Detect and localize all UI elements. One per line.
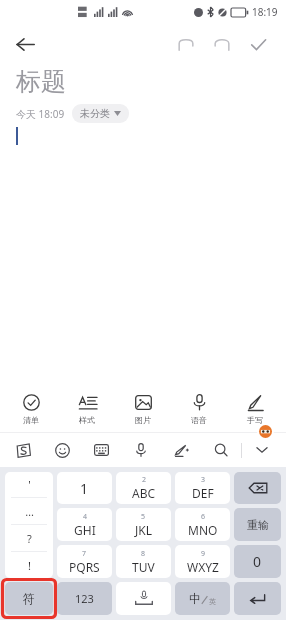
- button[interactable]: 1: [57, 472, 112, 504]
- staticText: 中: [189, 591, 201, 606]
- button[interactable]: 9: [175, 545, 230, 578]
- staticText: 清单: [23, 415, 39, 425]
- staticText: 0: [253, 552, 262, 571]
- staticText: ABC: [132, 485, 156, 501]
- button[interactable]: Switch language: [175, 582, 230, 615]
- staticText: PQRS: [69, 559, 100, 575]
- staticText: 18:19: [252, 5, 278, 19]
- button[interactable]: Redo: [204, 26, 240, 62]
- staticText: 图片: [135, 415, 151, 425]
- staticText: 英: [209, 597, 216, 606]
- staticText: JKL: [135, 522, 152, 538]
- button[interactable]: …: [5, 498, 53, 524]
- button[interactable]: Enter: [234, 582, 281, 615]
- button[interactable]: Emoji: [43, 433, 82, 467]
- staticText: 2: [142, 475, 147, 485]
- staticText: ': [28, 477, 31, 492]
- staticText: ?: [27, 531, 32, 546]
- staticText: 符: [23, 591, 35, 606]
- staticText: 今天 18:09: [16, 107, 65, 121]
- staticText: …: [25, 504, 34, 519]
- button[interactable]: Voice input: [121, 433, 161, 467]
- button[interactable]: Account: [257, 423, 274, 440]
- staticText: MNO: [188, 522, 218, 538]
- button[interactable]: 图片: [118, 391, 168, 427]
- staticText: 123: [75, 591, 94, 606]
- staticText: 1: [80, 479, 89, 498]
- button[interactable]: 未分类: [72, 104, 129, 123]
- button[interactable]: Hide keyboard: [242, 433, 282, 467]
- button[interactable]: 7: [57, 545, 112, 578]
- button[interactable]: !: [5, 552, 53, 578]
- button[interactable]: 123: [57, 582, 112, 615]
- button[interactable]: 5: [116, 508, 171, 541]
- button[interactable]: 重输: [234, 508, 281, 541]
- staticText: 7: [82, 549, 87, 559]
- staticText: 3: [201, 475, 206, 485]
- staticText: 8: [141, 549, 146, 559]
- button[interactable]: 2: [116, 472, 171, 504]
- staticText: 手写: [247, 415, 263, 425]
- button[interactable]: 语音: [174, 391, 224, 427]
- button[interactable]: 0: [234, 545, 281, 578]
- button[interactable]: Search: [201, 433, 241, 467]
- button[interactable]: Sogou input: [4, 433, 43, 467]
- button[interactable]: Keyboard: [82, 433, 121, 467]
- button[interactable]: 样式: [62, 391, 112, 427]
- button[interactable]: ?: [5, 525, 53, 551]
- staticText: !: [28, 558, 31, 573]
- staticText: 未分类: [80, 107, 110, 120]
- staticText: 4: [83, 512, 88, 522]
- button[interactable]: Handwriting: [161, 433, 201, 467]
- staticText: 语音: [191, 415, 207, 425]
- staticText: 9: [201, 549, 206, 559]
- staticText: 标题: [16, 66, 66, 97]
- button[interactable]: 清单: [6, 391, 56, 427]
- staticText: 重输: [247, 518, 269, 532]
- button[interactable]: 6: [175, 508, 230, 541]
- button[interactable]: 4: [57, 508, 112, 541]
- staticText: 样式: [79, 415, 95, 425]
- button[interactable]: Backspace: [234, 472, 281, 504]
- button[interactable]: 手写: [230, 391, 280, 427]
- button[interactable]: Space: [116, 582, 171, 615]
- staticText: DEF: [192, 485, 214, 501]
- staticText: GHI: [74, 522, 96, 538]
- staticText: TUV: [132, 559, 155, 575]
- button[interactable]: Back: [8, 27, 42, 61]
- staticText: WXYZ: [187, 559, 219, 575]
- button[interactable]: Done: [240, 26, 276, 62]
- staticText: 5: [141, 512, 146, 522]
- button[interactable]: 3: [175, 472, 230, 504]
- button[interactable]: Undo: [168, 26, 204, 62]
- button[interactable]: ': [5, 472, 53, 497]
- button[interactable]: 8: [116, 545, 171, 578]
- staticText: 6: [201, 512, 206, 522]
- button[interactable]: 符: [5, 582, 53, 615]
